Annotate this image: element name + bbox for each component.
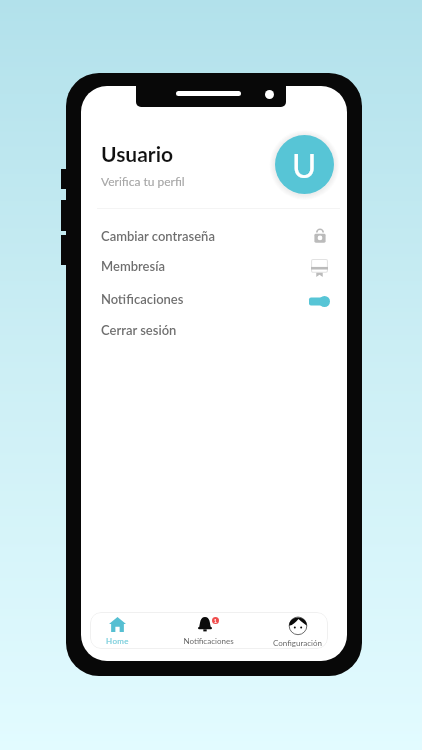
button[interactable]: Configuración bbox=[264, 612, 328, 649]
other: Cambiar contraseña bbox=[313, 228, 327, 244]
button[interactable]: Cambiar contraseña bbox=[81, 220, 347, 251]
button[interactable]: Membresía bbox=[81, 250, 347, 281]
staticText: 1 bbox=[214, 618, 217, 624]
staticText: Verifica tu perfil bbox=[101, 174, 185, 188]
button[interactable]: Notificaciones bbox=[81, 283, 347, 314]
staticText: Cerrar sesión bbox=[101, 322, 177, 338]
staticText: U bbox=[292, 145, 317, 185]
other: Membresía bbox=[311, 259, 328, 277]
staticText: Usuario bbox=[101, 141, 174, 166]
staticText: Configuración bbox=[273, 638, 322, 648]
button[interactable]: Home bbox=[90, 612, 150, 649]
button[interactable]: 1 bbox=[175, 612, 241, 649]
staticText: Home bbox=[106, 636, 129, 646]
button[interactable]: Cerrar sesión bbox=[81, 314, 347, 345]
button[interactable]: U bbox=[275, 135, 334, 194]
button[interactable]: Notificaciones bbox=[309, 296, 330, 307]
staticText: Notificaciones bbox=[101, 291, 184, 307]
staticText: Cambiar contraseña bbox=[101, 228, 215, 244]
staticText: Notificaciones bbox=[183, 636, 234, 646]
staticText: Membresía bbox=[101, 258, 165, 274]
